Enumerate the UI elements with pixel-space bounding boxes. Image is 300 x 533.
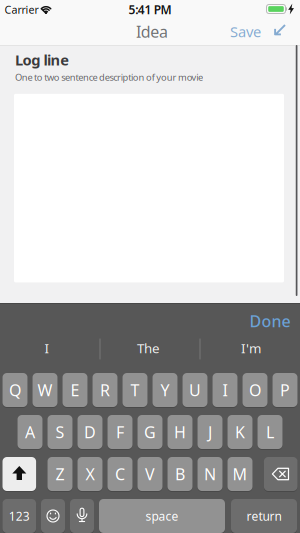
staticText: C [115,463,125,485]
staticText: A [25,421,35,443]
button[interactable]: Q [2,372,27,407]
button[interactable]: G [137,414,162,449]
button[interactable]: J [197,414,222,449]
button[interactable]: B [167,456,192,491]
staticText: return [246,508,281,524]
button[interactable]: C [107,456,132,491]
button[interactable]: I [0,334,96,362]
staticText: N [204,463,216,485]
staticText: W [37,379,52,401]
button[interactable]: T [122,372,147,407]
button[interactable]: N [197,456,222,491]
staticText: B [175,463,185,485]
button[interactable]: Save [225,19,265,44]
button[interactable]: Emoji [41,498,65,533]
staticText: Save [230,22,261,41]
staticText: space [145,508,178,524]
staticText: P [280,379,290,401]
staticText: M [232,463,247,485]
button[interactable]: S [47,414,72,449]
button[interactable]: D [77,414,102,449]
button[interactable]: 123 [2,498,36,533]
button[interactable]: Dismiss Keyboard [272,24,286,37]
button[interactable]: V [137,456,162,491]
button[interactable]: I'm [202,334,300,362]
button[interactable]: F [107,414,132,449]
staticText: 123 [9,508,30,524]
staticText: K [235,421,245,443]
button[interactable]: E [62,372,87,407]
button[interactable]: R [92,372,117,407]
button[interactable]: Delete [264,456,297,491]
staticText: R [100,379,110,401]
staticText: Carrier [4,2,38,17]
staticText: X [85,463,94,485]
button[interactable]: I [212,372,237,407]
button[interactable]: O [242,372,267,407]
staticText: Idea [136,21,168,42]
staticText: Done [249,310,290,332]
staticText: Q [9,379,21,401]
button[interactable]: Y [152,372,177,407]
staticText: L [266,421,274,443]
staticText: 5:41 PM [128,1,171,17]
staticText: The [137,339,160,357]
staticText: J [208,421,212,443]
button[interactable]: Z [47,456,72,491]
staticText: Z [55,463,64,485]
staticText: Y [160,379,169,401]
staticText: One to two sentence description of your … [15,71,203,83]
staticText: F [116,421,124,443]
button[interactable]: The [99,334,197,362]
staticText: U [189,379,201,401]
button[interactable]: A [17,414,42,449]
staticText: T [130,379,139,401]
button[interactable]: X [77,456,102,491]
staticText: I [222,379,227,401]
button[interactable]: P [272,372,297,407]
button[interactable]: Shift [2,456,36,491]
button[interactable]: H [167,414,192,449]
staticText: E [70,379,79,401]
staticText: I [44,339,49,357]
button[interactable]: W [32,372,57,407]
staticText: D [84,421,96,443]
button[interactable]: U [182,372,207,407]
button[interactable]: L [257,414,282,449]
button[interactable]: space [99,498,225,533]
staticText: Log line [15,50,69,69]
button[interactable]: M [227,456,252,491]
staticText: V [145,463,155,485]
button[interactable]: Dictate [70,498,94,533]
staticText: S [55,421,64,443]
staticText: H [174,421,186,443]
staticText: O [249,379,261,401]
staticText: G [144,421,156,443]
button[interactable]: K [227,414,252,449]
button[interactable]: return [231,498,297,533]
staticText: I'm [241,339,261,357]
button[interactable]: Done [245,308,295,334]
